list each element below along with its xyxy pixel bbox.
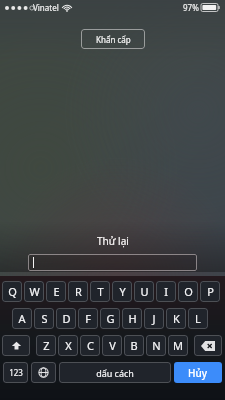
staticText: Y	[119, 284, 126, 299]
staticText: Khẩn cấp	[96, 34, 131, 45]
staticText: Vinatel	[33, 2, 59, 13]
button[interactable]: S	[34, 308, 54, 329]
staticText: Z	[43, 338, 50, 353]
button[interactable]: J	[144, 308, 164, 329]
staticText: L	[195, 311, 201, 326]
staticText: D	[62, 311, 71, 326]
staticText: A	[18, 311, 26, 326]
button[interactable]: V	[102, 335, 122, 356]
button[interactable]: F	[78, 308, 98, 329]
staticText: I	[164, 284, 168, 299]
button[interactable]: 123	[3, 362, 28, 383]
button[interactable]: A	[12, 308, 32, 329]
staticText: Thử lại	[97, 234, 129, 248]
button[interactable]: Q	[2, 281, 22, 302]
button[interactable]: L	[188, 308, 208, 329]
staticText: B	[130, 338, 138, 353]
button[interactable]: E	[46, 281, 66, 302]
staticText: H	[128, 311, 137, 326]
button[interactable]: dấu cách	[59, 362, 171, 383]
staticText: X	[65, 338, 72, 353]
staticText: N	[152, 338, 161, 353]
button[interactable]: P	[200, 281, 220, 302]
staticText: dấu cách	[96, 367, 134, 379]
staticText: P	[207, 284, 214, 299]
staticText: Q	[8, 284, 17, 299]
button[interactable]: O	[178, 281, 198, 302]
button[interactable]: U	[134, 281, 154, 302]
button[interactable]: C	[80, 335, 100, 356]
staticText: 123	[9, 367, 23, 378]
button[interactable]: I	[156, 281, 176, 302]
staticText: V	[109, 338, 116, 353]
staticText: S	[41, 311, 48, 326]
button[interactable]: H	[122, 308, 142, 329]
button[interactable]: Khẩn cấp	[81, 29, 145, 49]
button[interactable]: Backspace	[194, 335, 222, 356]
button[interactable]: B	[124, 335, 144, 356]
button[interactable]: X	[58, 335, 78, 356]
staticText: E	[53, 284, 60, 299]
staticText: R	[75, 284, 82, 299]
staticText: K	[173, 311, 180, 326]
staticText: 97%	[183, 2, 199, 13]
button[interactable]: D	[56, 308, 76, 329]
staticText: T	[97, 284, 104, 299]
button[interactable]	[28, 254, 197, 271]
button[interactable]: Hủy	[174, 362, 222, 383]
staticText: G	[106, 311, 115, 326]
button[interactable]: Z	[36, 335, 56, 356]
button[interactable]: W	[24, 281, 44, 302]
staticText: W	[29, 284, 40, 299]
staticText: J	[152, 311, 156, 326]
button[interactable]: R	[68, 281, 88, 302]
staticText: C	[87, 338, 94, 353]
staticText: Hủy	[188, 366, 208, 380]
button[interactable]: Shift	[2, 335, 30, 356]
button[interactable]: Y	[112, 281, 132, 302]
staticText: O	[184, 284, 193, 299]
button[interactable]: M	[168, 335, 188, 356]
button[interactable]: Change keyboard	[31, 362, 56, 383]
staticText: M	[173, 338, 183, 353]
staticText: F	[85, 311, 91, 326]
button[interactable]: N	[146, 335, 166, 356]
staticText: U	[140, 284, 149, 299]
button[interactable]: G	[100, 308, 120, 329]
button[interactable]: K	[166, 308, 186, 329]
button[interactable]: T	[90, 281, 110, 302]
